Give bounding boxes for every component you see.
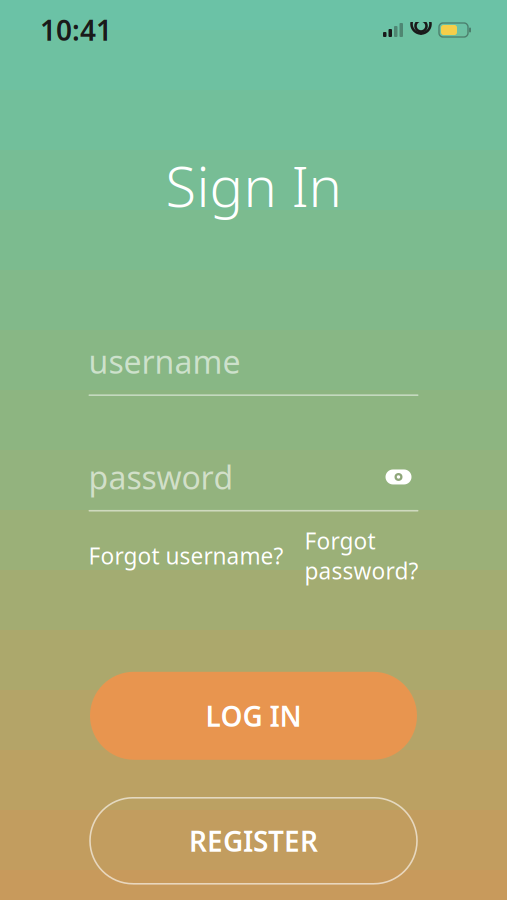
button[interactable]: Forgot username? — [88, 541, 283, 571]
staticText: REGISTER — [189, 822, 318, 859]
staticText: Sign In — [165, 148, 341, 222]
staticText: password — [88, 456, 233, 498]
button[interactable]: REGISTER — [90, 798, 417, 884]
button[interactable]: LOG IN — [90, 672, 417, 760]
staticText: LOG IN — [205, 697, 301, 734]
staticText: username — [88, 340, 240, 383]
staticText: Forgot password? — [304, 526, 418, 586]
button[interactable]: Forgot password? — [304, 526, 418, 586]
staticText: 10:41 — [40, 11, 112, 49]
staticText: Forgot username? — [88, 541, 283, 571]
button[interactable]: Show password — [378, 460, 418, 494]
